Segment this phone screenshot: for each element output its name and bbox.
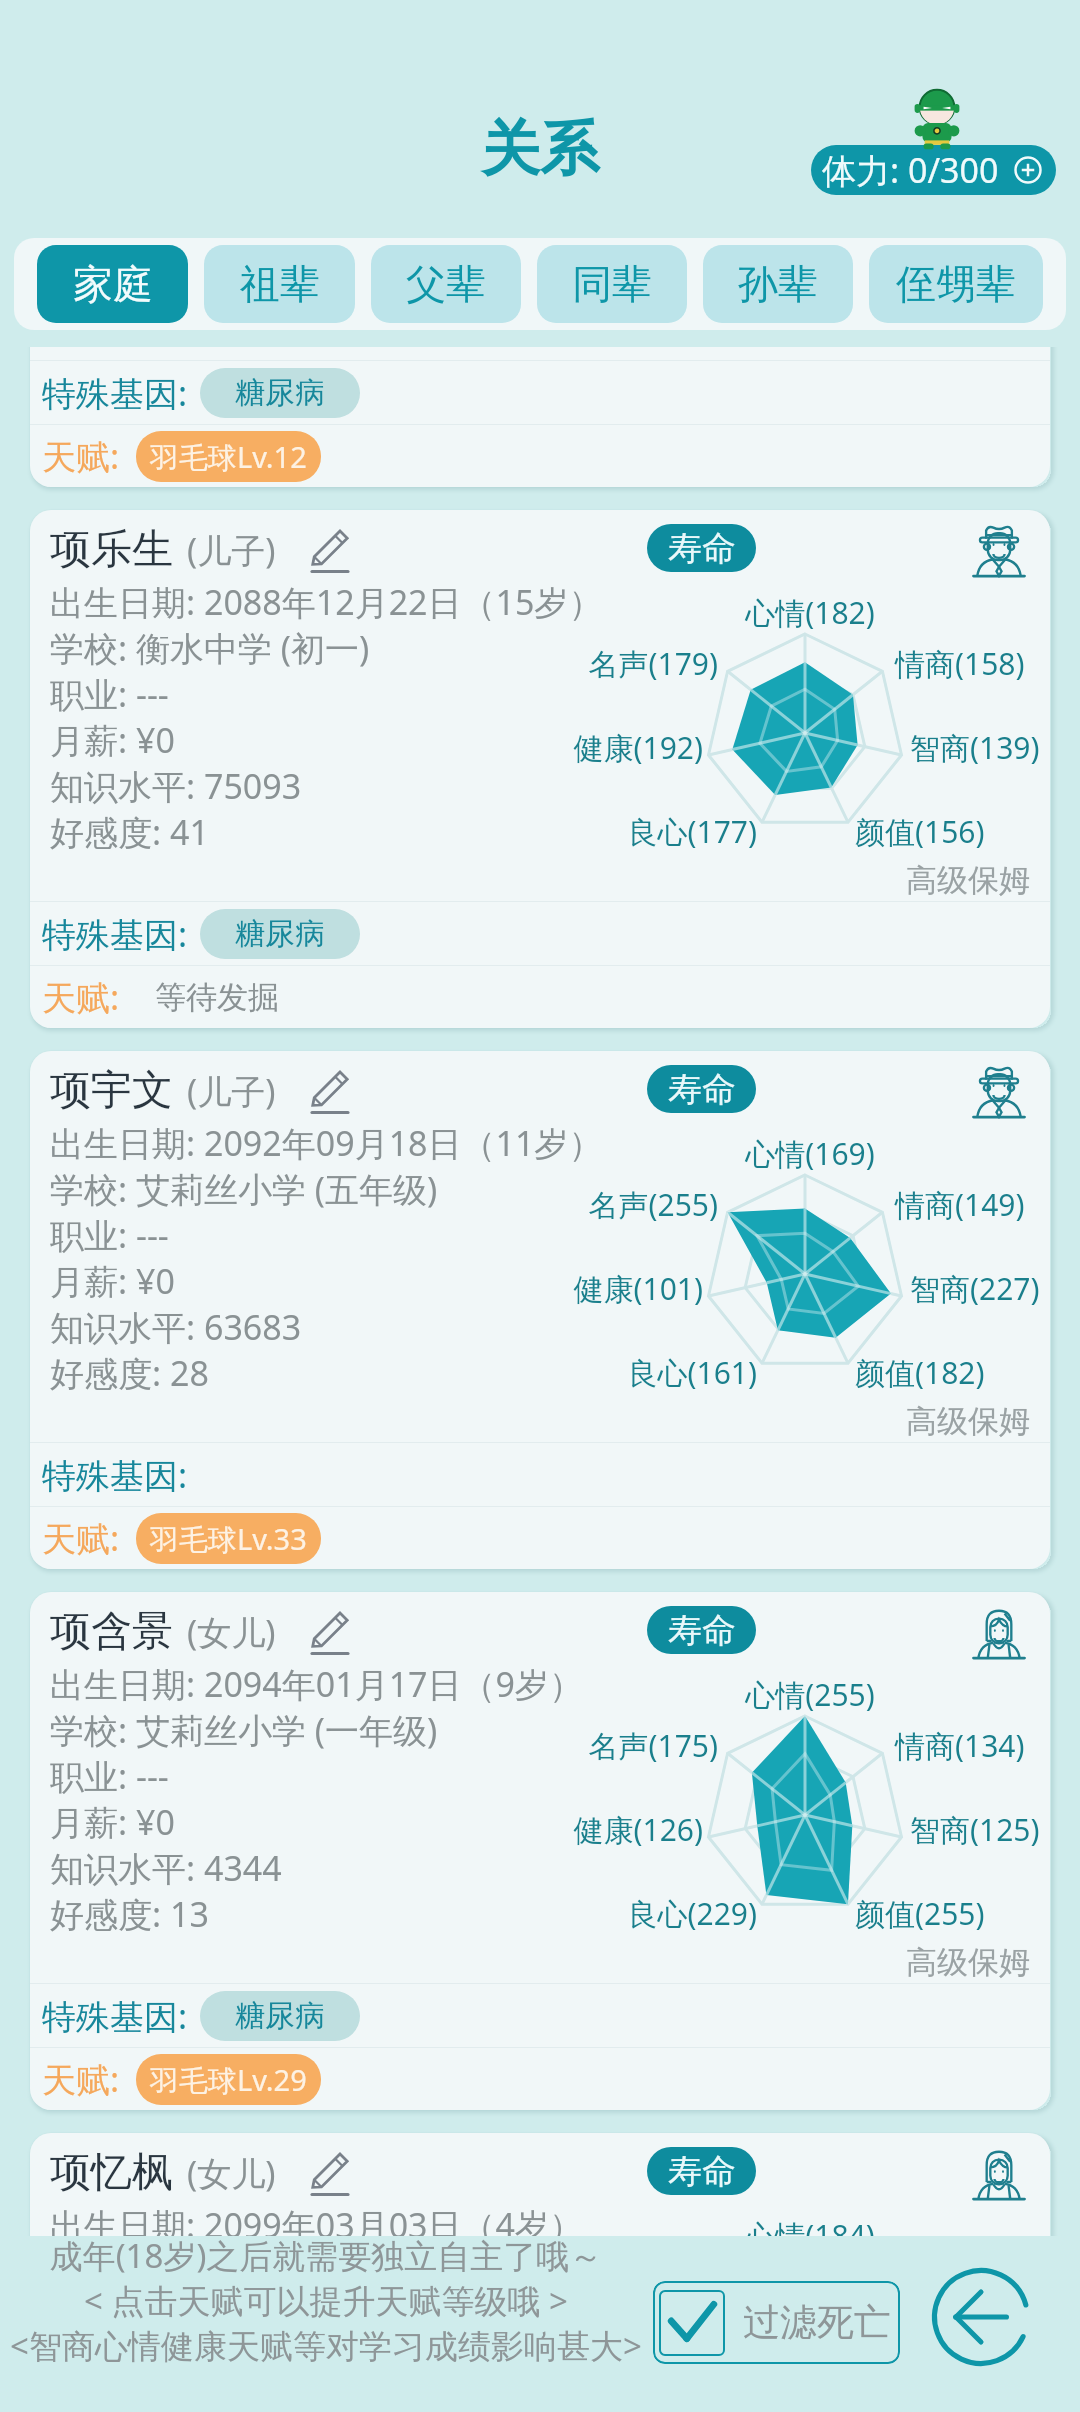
staticText: 侄甥辈 [896,259,1016,309]
staticText: 寿命 [668,527,736,570]
staticText: 良心(177) [527,811,757,852]
staticText: 特殊基因: [42,1993,188,2039]
button[interactable]: 羽毛球Lv.33 [136,1513,321,1564]
other: Add energy [1014,156,1042,184]
button[interactable]: Avatar [971,1063,1027,1119]
staticText: 祖辈 [240,259,320,309]
staticText: (女儿) [187,2150,276,2196]
button[interactable]: 寿命 [647,1606,756,1654]
staticText: 名声(255) [488,1184,718,1225]
staticText: 特殊基因: [42,911,188,957]
button[interactable]: 糖尿病 [200,909,360,959]
staticText: 家庭 [73,259,153,309]
staticText: 等待发掘 [155,978,279,1017]
staticText: 心情(255) [695,1674,925,1715]
staticText: 寿命 [668,2150,736,2193]
button[interactable]: 羽毛球Lv.12 [136,431,321,482]
staticText: 项忆枫 [50,2147,173,2199]
staticText: 情商(149) [895,1184,1050,1225]
staticText: 颜值(156) [855,811,1050,852]
button[interactable]: 寿命 [647,524,756,572]
staticText: 高级保姆 [906,861,1030,900]
button[interactable]: 羽毛球Lv.29 [136,2054,321,2105]
button[interactable]: 过滤死亡 [653,2281,900,2364]
staticText: 羽毛球Lv.12 [150,437,307,477]
staticText: 天赋: [42,1515,120,1561]
staticText: 项宇文 [50,1065,173,1117]
button[interactable]: Avatar [971,522,1027,578]
staticText: 羽毛球Lv.29 [150,2060,307,2100]
staticText: 项乐生 [50,524,173,576]
staticText: 天赋: [42,433,120,479]
staticText: 天赋: [42,2056,120,2102]
staticText: 特殊基因: [42,370,188,416]
staticText: 良心(161) [527,1352,757,1393]
staticText: 天赋: [42,974,120,1020]
button[interactable]: 项宇文 [30,1051,1050,1569]
staticText: 高级保姆 [906,1402,1030,1441]
staticText: (女儿) [187,1609,276,1655]
button[interactable]: Edit name [302,525,352,575]
button[interactable]: 父辈 [371,245,521,323]
staticText: 良心(229) [527,1893,757,1934]
staticText: 健康(192) [473,727,703,768]
staticText: (儿子) [187,527,276,573]
button[interactable]: Edit name [302,2148,352,2198]
button[interactable]: 侄甥辈 [869,245,1043,323]
button[interactable]: 项含景 [30,1592,1050,2110]
staticText: 项含景 [50,1606,173,1658]
staticText: 出生日期: 2088年12月22日（15岁） 学校: 衡水中学 (初一) 职业:… [50,579,603,855]
staticText: 关系 [481,112,599,186]
staticText: 出生日期: 2099年03月03日（4岁） 学校: --- 职业: --- 月薪… [50,2202,583,2236]
button[interactable]: 项小宝 [30,347,1050,487]
staticText: 父辈 [406,259,486,309]
button[interactable]: 祖辈 [204,245,355,323]
staticText: 情商(158) [895,643,1050,684]
button[interactable]: Avatar [971,1604,1027,1660]
staticText: 智商(125) [910,1809,1050,1850]
button[interactable]: 同辈 [537,245,687,323]
staticText: 出生日期: 2092年09月18日（11岁） 学校: 艾莉丝小学 (五年级) 职… [50,1120,603,1396]
staticText: 心情(169) [695,1133,925,1174]
staticText: 体力: 0/300 [822,147,999,193]
button[interactable]: 家庭 [37,245,188,323]
staticText: 同辈 [572,259,652,309]
button[interactable]: Edit name [302,1066,352,1116]
staticText: 糖尿病 [235,1997,325,2035]
button[interactable]: Avatar [971,2145,1027,2201]
staticText: 孙辈 [738,259,818,309]
button[interactable]: 项乐生 [30,510,1050,1028]
staticText: 智商(139) [910,727,1050,768]
staticText: 特殊基因: [42,1452,188,1498]
staticText: 过滤死亡 [743,2299,891,2346]
staticText: 羽毛球Lv.33 [150,1519,307,1559]
button[interactable]: 体力: 0/300 [811,145,1056,195]
staticText: 情商(134) [895,1725,1050,1766]
button[interactable]: 糖尿病 [200,368,360,418]
button[interactable]: 寿命 [647,2147,756,2195]
staticText: (儿子) [187,1068,276,1114]
button[interactable]: 寿命 [647,1065,756,1113]
staticText: 颜值(182) [855,1352,1050,1393]
button[interactable]: 糖尿病 [200,1991,360,2041]
staticText: 糖尿病 [235,915,325,953]
staticText: 成年(18岁)之后就需要独立自主了哦～ < 点击天赋可以提升天赋等级哦 > <智… [8,2233,644,2368]
button[interactable]: Edit name [302,1607,352,1657]
button[interactable]: 项忆枫 [30,2133,1050,2236]
staticText: 健康(101) [473,1268,703,1309]
staticText: 颜值(255) [855,1893,1050,1934]
staticText: 名声(179) [488,643,718,684]
staticText: 高级保姆 [906,1943,1030,1982]
staticText: 出生日期: 2094年01月17日（9岁） 学校: 艾莉丝小学 (一年级) 职业… [50,1661,583,1937]
button[interactable]: 孙辈 [703,245,853,323]
staticText: 健康(126) [473,1809,703,1850]
staticText: 糖尿病 [235,374,325,412]
staticText: 名声(175) [488,1725,718,1766]
staticText: 智商(227) [910,1268,1050,1309]
staticText: 寿命 [668,1068,736,1111]
staticText: 心情(184) [695,2215,925,2236]
button[interactable]: Back [932,2268,1030,2366]
staticText: 心情(182) [695,592,925,633]
staticText: 寿命 [668,1609,736,1652]
